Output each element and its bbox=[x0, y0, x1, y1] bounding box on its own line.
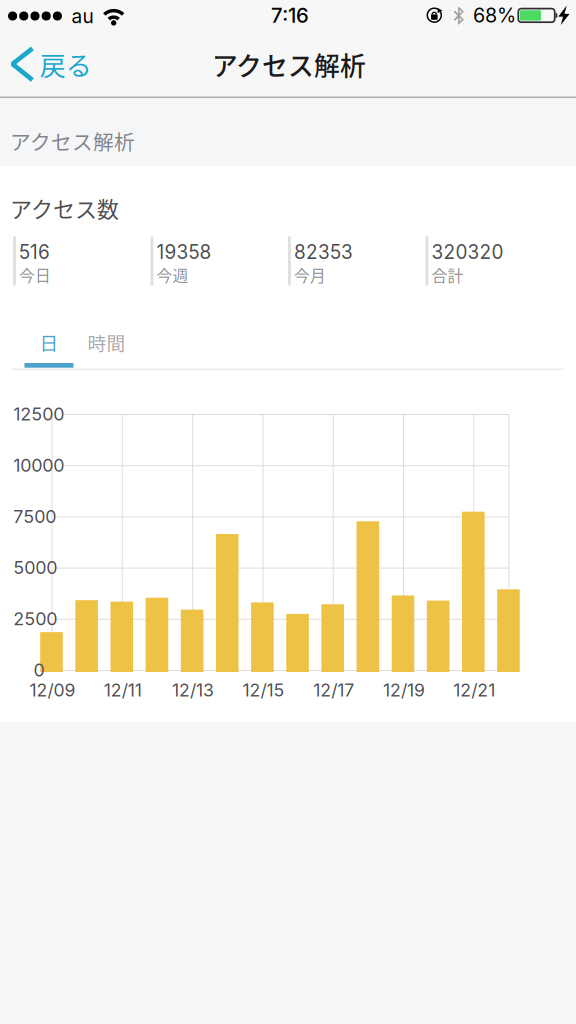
staticText: 5000 bbox=[13, 557, 57, 578]
staticText: アクセス数 bbox=[10, 192, 119, 224]
staticText: 2500 bbox=[13, 608, 57, 630]
staticText: 12/13 bbox=[172, 679, 214, 701]
staticText: 12/21 bbox=[453, 679, 495, 701]
staticText: 12/19 bbox=[383, 679, 425, 701]
staticText: 7500 bbox=[13, 506, 56, 527]
staticText: 今月 bbox=[294, 263, 326, 286]
staticText: 12/17 bbox=[313, 679, 354, 701]
staticText: アクセス解析 bbox=[212, 46, 366, 83]
staticText: 516 bbox=[19, 241, 50, 263]
staticText: 日 bbox=[39, 328, 58, 355]
staticText: 19358 bbox=[157, 241, 212, 263]
staticText: 今週 bbox=[157, 263, 189, 286]
staticText: 今日 bbox=[19, 263, 51, 286]
staticText: アクセス解析 bbox=[10, 126, 135, 156]
staticText: 10000 bbox=[13, 454, 64, 476]
staticText: 戻る bbox=[40, 46, 92, 83]
staticText: 0 bbox=[33, 659, 44, 681]
staticText: 12/15 bbox=[242, 679, 284, 701]
staticText: 時間 bbox=[87, 328, 125, 355]
staticText: au bbox=[72, 5, 94, 28]
button[interactable]: 日 bbox=[24, 321, 73, 368]
staticText: 320320 bbox=[432, 241, 504, 263]
staticText: 合計 bbox=[432, 263, 464, 286]
staticText: 12/11 bbox=[104, 679, 142, 701]
staticText: 82353 bbox=[294, 241, 353, 263]
button[interactable]: 戻る bbox=[8, 36, 96, 92]
staticText: 68% bbox=[473, 3, 516, 27]
staticText: 7:16 bbox=[271, 3, 309, 27]
staticText: 12500 bbox=[13, 403, 64, 425]
button[interactable]: 時間 bbox=[82, 321, 131, 368]
staticText: 12/09 bbox=[29, 679, 75, 701]
